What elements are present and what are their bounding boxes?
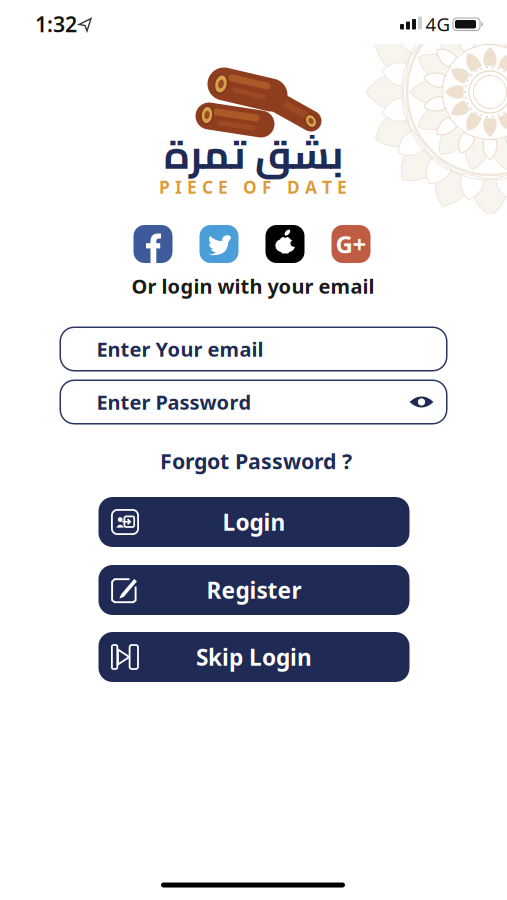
button[interactable]: Sign in with Facebook <box>133 225 172 263</box>
staticText: P I E C E O F D A T E <box>159 175 347 198</box>
button[interactable]: Show password <box>409 396 433 408</box>
staticText: بشق تمرة <box>163 116 342 191</box>
button[interactable]: Sign in with Apple <box>265 225 304 263</box>
button[interactable]: Register <box>98 565 409 615</box>
staticText: 1:32 <box>35 10 77 38</box>
button[interactable]: Login <box>98 497 409 547</box>
button[interactable]: Skip Login <box>98 632 409 682</box>
button[interactable]: Sign in with Google <box>331 225 370 263</box>
staticText: 4G <box>425 12 450 36</box>
button[interactable]: Enter Password <box>59 379 447 424</box>
staticText: Register <box>206 575 301 605</box>
staticText: Forgot Password ? <box>160 447 352 475</box>
staticText: G+ <box>335 228 366 260</box>
staticText: Enter Your email <box>96 336 263 362</box>
staticText: Skip Login <box>196 642 312 672</box>
button[interactable]: Forgot Password ? <box>160 447 352 475</box>
staticText: Or login with your email <box>131 273 374 299</box>
staticText: Enter Password <box>96 389 251 415</box>
button[interactable]: Sign in with Twitter <box>199 225 238 263</box>
button[interactable]: Enter Your email <box>59 326 447 371</box>
staticText: Login <box>222 507 285 537</box>
